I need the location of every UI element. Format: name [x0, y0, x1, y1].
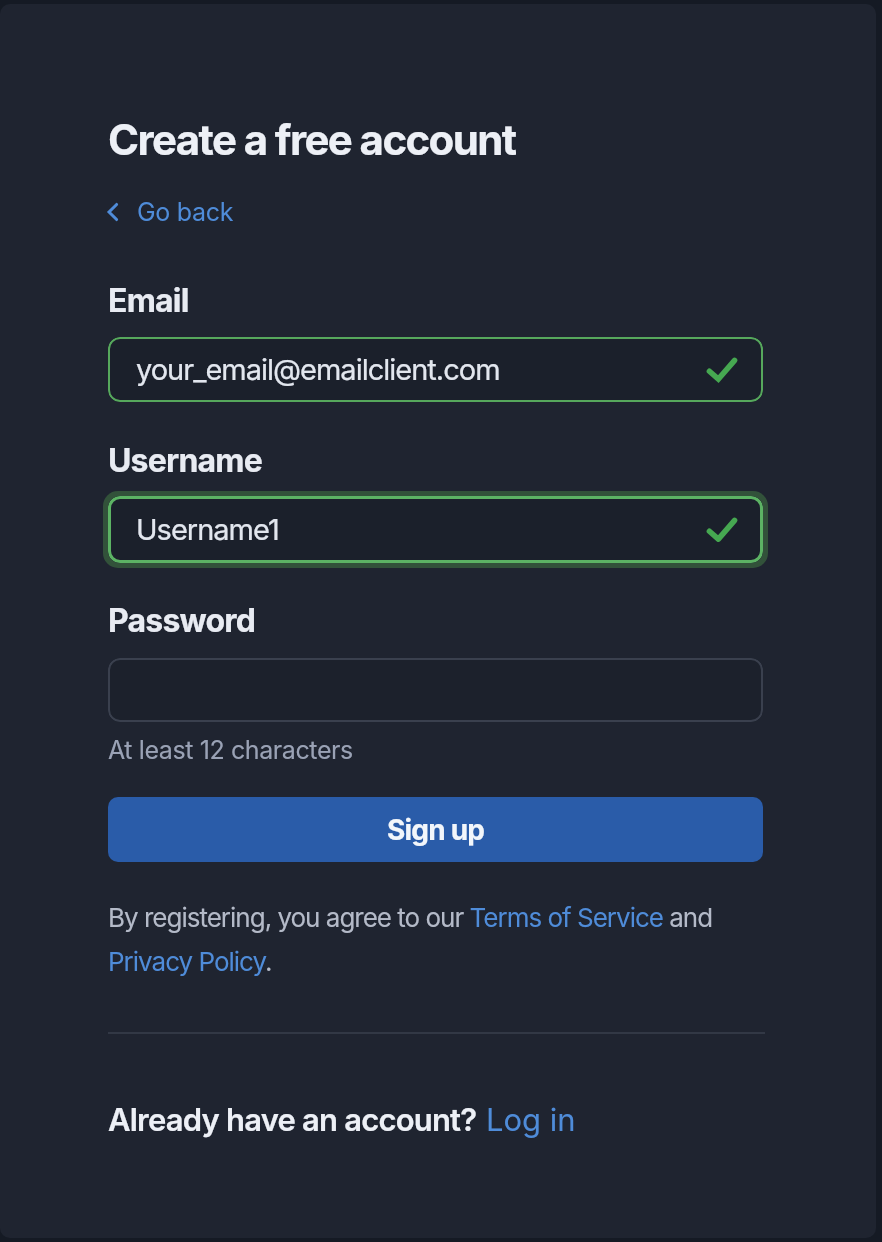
staticText: By registering, you agree to our Terms o…: [108, 902, 713, 977]
button[interactable]: Go back: [104, 196, 234, 227]
staticText: Create a free account: [108, 114, 516, 164]
staticText: Already have an account?: [108, 1101, 477, 1139]
button[interactable]: Username1: [108, 496, 763, 563]
staticText: your_email@emailclient.com: [136, 352, 500, 387]
button[interactable]: your_email@emailclient.com: [108, 337, 763, 402]
staticText: Email: [108, 281, 189, 315]
staticText: Sign up: [387, 813, 485, 847]
staticText: Go back: [137, 197, 234, 227]
staticText: Log in: [486, 1101, 576, 1139]
button[interactable]: Sign up: [108, 797, 763, 862]
staticText: Password: [108, 601, 256, 635]
button[interactable]: [108, 658, 763, 722]
staticText: Username1: [136, 512, 279, 547]
staticText: At least 12 characters: [108, 735, 353, 763]
button[interactable]: Log in: [486, 1101, 576, 1139]
staticText: Username: [108, 441, 263, 475]
